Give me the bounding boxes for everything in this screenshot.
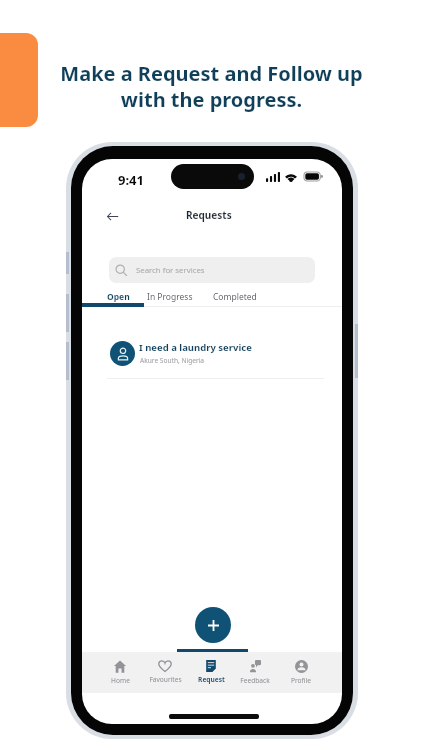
button[interactable]: Completed bbox=[213, 290, 257, 303]
staticText: Completed bbox=[213, 291, 257, 303]
staticText: Search for services bbox=[136, 265, 205, 276]
staticText: Open bbox=[107, 291, 130, 303]
staticText: Feedback bbox=[240, 676, 270, 685]
staticText: Favourites bbox=[149, 675, 182, 684]
staticText: 9:41 bbox=[118, 171, 144, 189]
button[interactable]: Request bbox=[187, 660, 235, 684]
button[interactable]: Add request bbox=[195, 607, 231, 643]
button[interactable]: Open bbox=[107, 290, 130, 303]
staticText: Profile bbox=[291, 676, 311, 685]
button[interactable]: I need a laundry service bbox=[82, 333, 342, 371]
button[interactable]: Search for services bbox=[109, 257, 315, 283]
staticText: Make a Request and Follow up with the pr… bbox=[60, 60, 363, 112]
staticText: In Progress bbox=[147, 291, 193, 303]
staticText: Akure South, Nigeria bbox=[140, 356, 205, 365]
button[interactable]: Back bbox=[105, 209, 120, 224]
staticText: Requests bbox=[186, 208, 232, 222]
button[interactable]: Home bbox=[96, 660, 144, 685]
button[interactable]: Favourites bbox=[141, 660, 189, 684]
staticText: Home bbox=[111, 676, 130, 685]
button[interactable]: Profile bbox=[277, 660, 325, 685]
button[interactable]: Feedback bbox=[231, 660, 279, 685]
staticText: Request bbox=[198, 675, 225, 684]
staticText: I need a laundry service bbox=[139, 341, 252, 354]
button[interactable]: In Progress bbox=[147, 290, 193, 303]
